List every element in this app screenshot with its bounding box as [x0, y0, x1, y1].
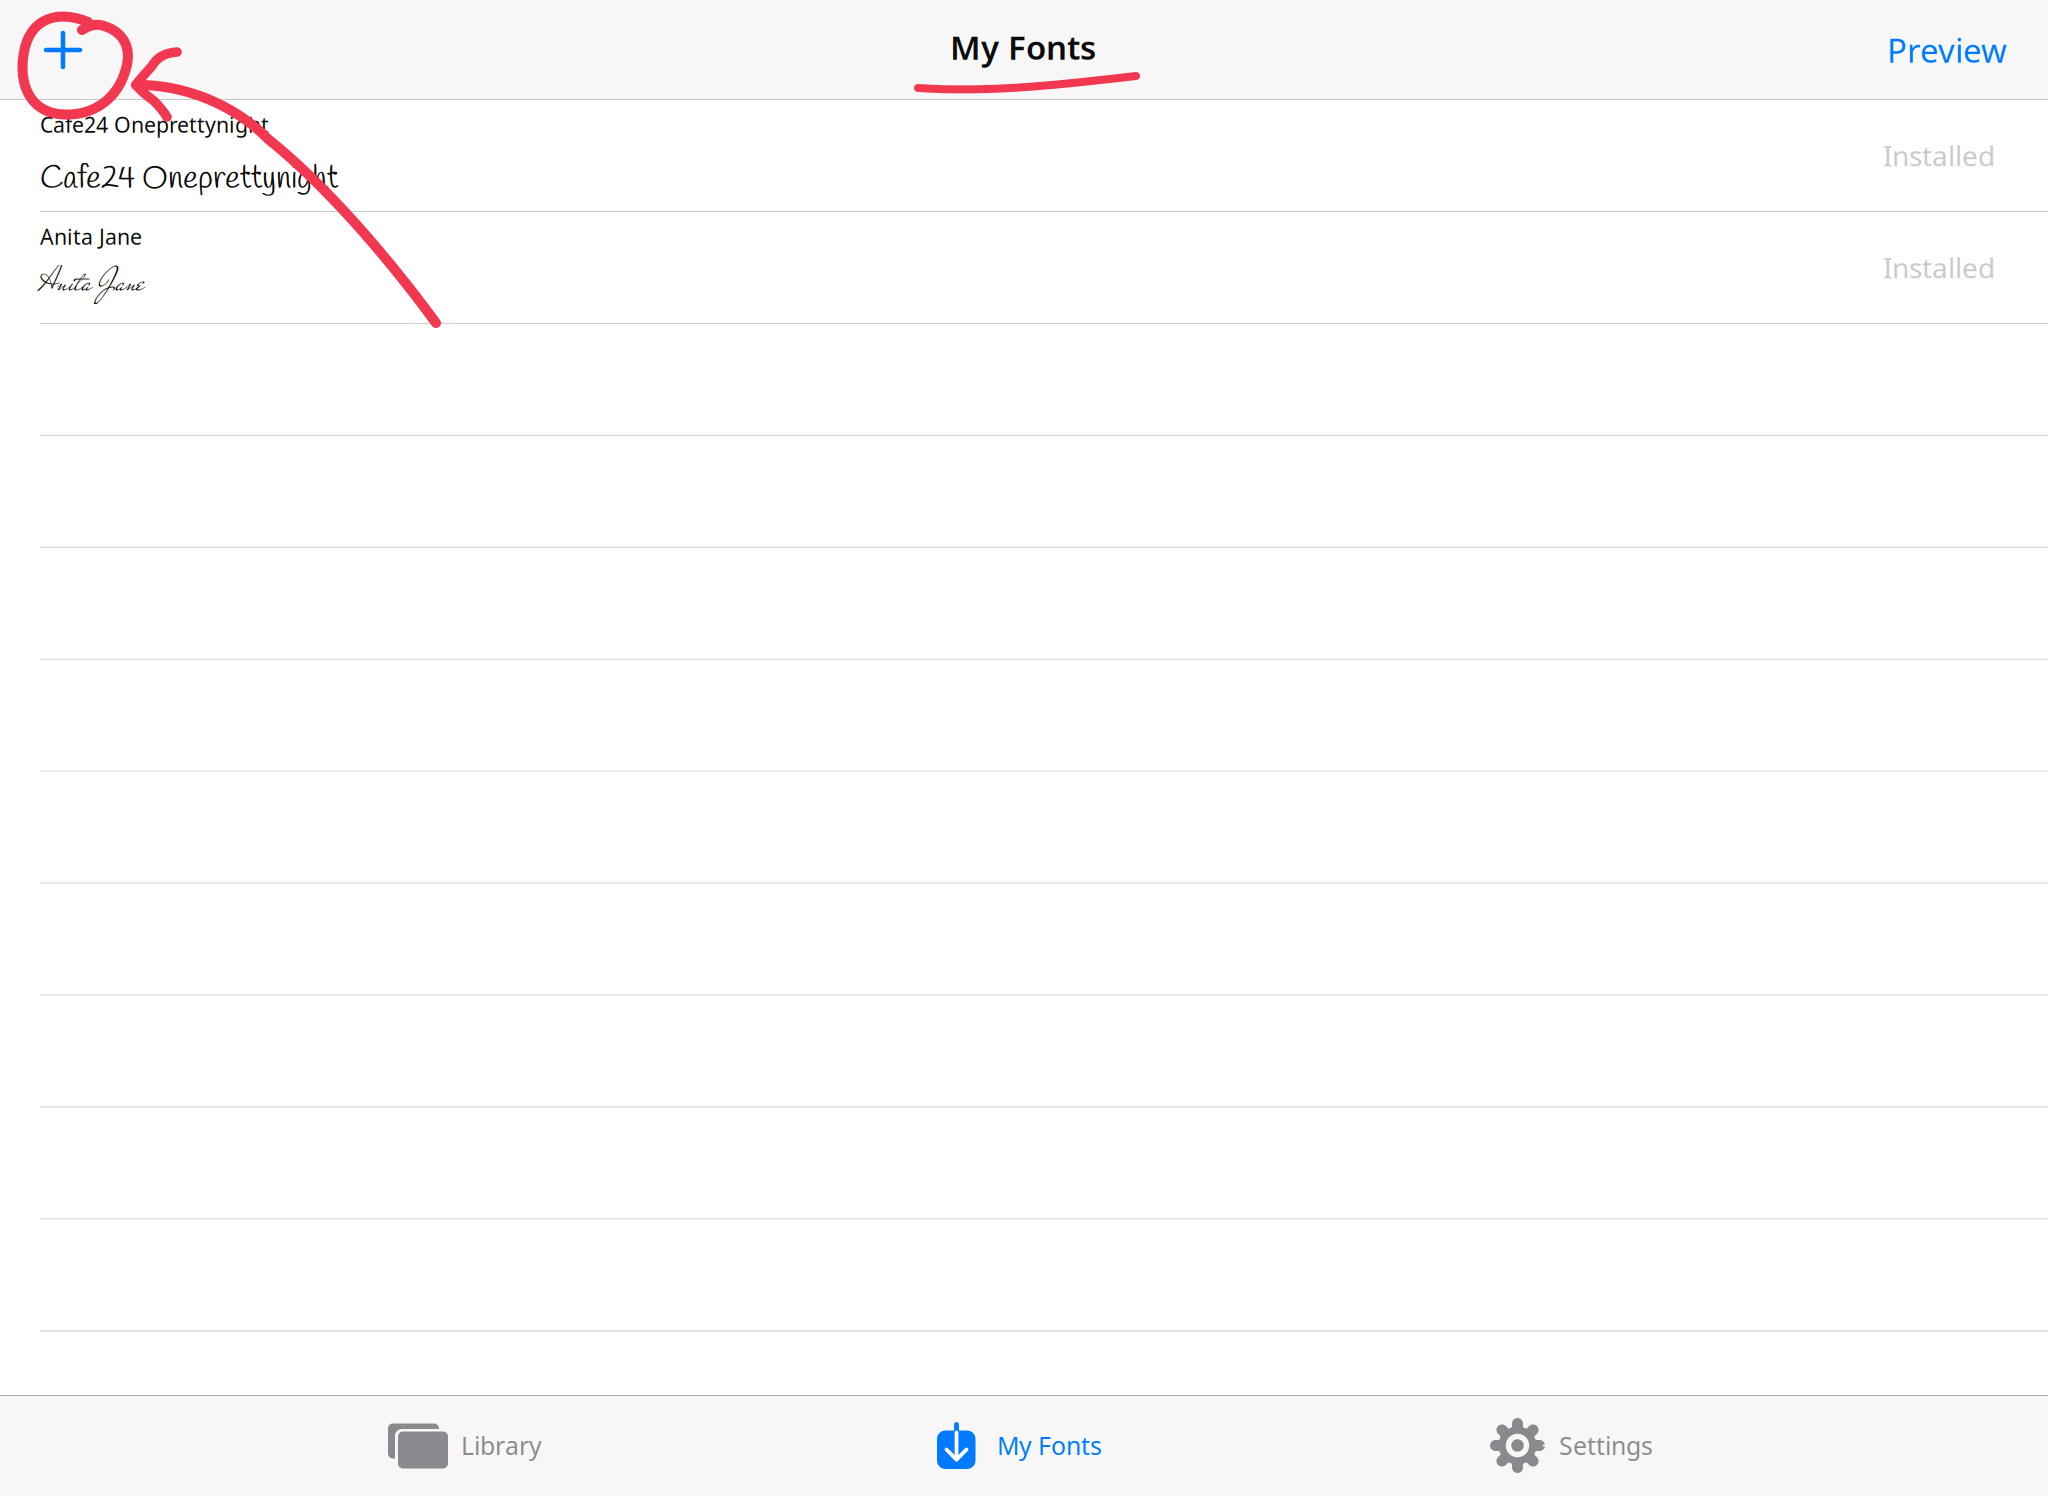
staticText: Anita Jane: [40, 222, 142, 251]
button[interactable]: Preview: [1887, 0, 2048, 100]
staticText: Installed: [1883, 136, 1995, 174]
staticText: Library: [461, 1429, 542, 1462]
button[interactable]: Anita Jane: [0, 212, 2048, 323]
staticText: My Fonts: [997, 1429, 1102, 1462]
staticText: Settings: [1559, 1429, 1653, 1462]
button[interactable]: Add font: [0, 0, 105, 100]
button[interactable]: Library: [0, 1395, 550, 1496]
button[interactable]: Cafe24 Oneprettynight: [0, 100, 2048, 211]
staticText: Cafe24 Oneprettynight: [40, 158, 338, 200]
button[interactable]: My Fonts: [550, 1395, 1100, 1496]
staticText: Cafe24 Oneprettynight: [40, 110, 269, 139]
staticText: My Fonts: [950, 25, 1096, 69]
staticText: Installed: [1883, 248, 1995, 286]
staticText: Preview: [1887, 28, 2007, 72]
button[interactable]: Settings: [1100, 1395, 2048, 1496]
staticText: Anita Jane: [40, 260, 145, 304]
